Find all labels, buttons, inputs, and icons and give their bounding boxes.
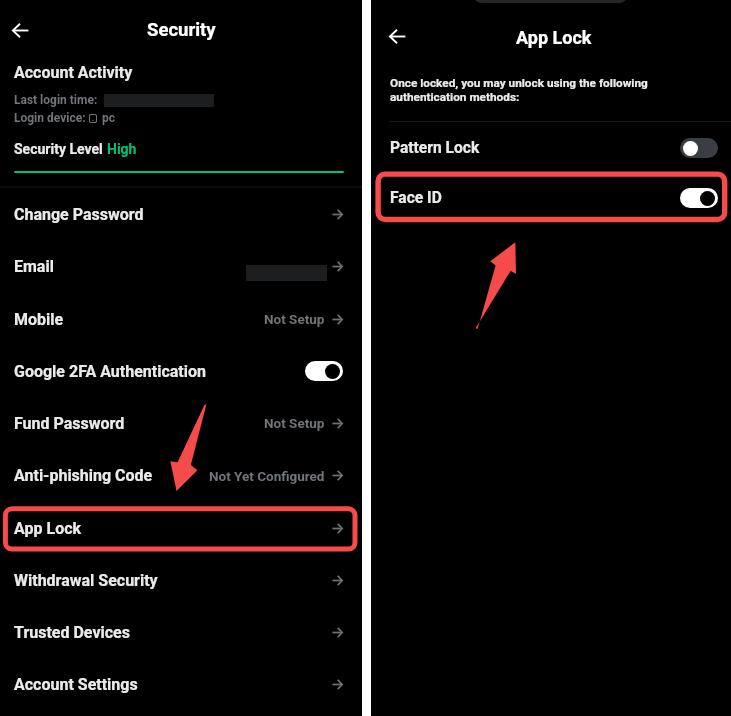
button[interactable]: Back bbox=[381, 20, 414, 53]
staticText: Once locked, you may unlock using the fo… bbox=[390, 76, 648, 104]
staticText: Security bbox=[147, 19, 216, 41]
staticText: Account Settings bbox=[14, 675, 138, 694]
staticText: Fund Password bbox=[14, 414, 125, 433]
staticText: Login device: bbox=[14, 111, 89, 125]
staticText: Not Setup bbox=[264, 415, 325, 431]
staticText: App Lock bbox=[516, 27, 592, 48]
staticText: Pattern Lock bbox=[390, 139, 480, 157]
staticText: Security Level bbox=[14, 141, 107, 157]
button[interactable]: Pattern Lock bbox=[371, 123, 731, 173]
button[interactable]: Google 2FA Authentication bbox=[0, 345, 362, 397]
staticText: Last login time: bbox=[14, 93, 101, 107]
button[interactable]: Face ID bbox=[371, 173, 731, 223]
button[interactable]: Trusted Devices bbox=[0, 606, 362, 658]
button[interactable]: App Lock bbox=[0, 502, 362, 554]
staticText: Trusted Devices bbox=[14, 623, 130, 642]
button[interactable]: Back bbox=[4, 14, 37, 47]
staticText: App Lock bbox=[14, 519, 82, 538]
staticText: High bbox=[107, 141, 137, 157]
staticText: Anti-phishing Code bbox=[14, 466, 153, 485]
button[interactable]: Email bbox=[0, 240, 362, 293]
staticText: Google 2FA Authentication bbox=[14, 362, 207, 381]
button[interactable]: Toggle on bbox=[305, 361, 343, 381]
staticText: pc bbox=[102, 111, 116, 125]
staticText: Email bbox=[14, 257, 54, 276]
staticText: Face ID bbox=[390, 189, 442, 207]
staticText: Not Setup bbox=[264, 311, 325, 327]
staticText: Mobile bbox=[14, 310, 64, 329]
button[interactable]: Change Password bbox=[0, 188, 362, 240]
staticText: Not Yet Configured bbox=[209, 468, 325, 484]
staticText: Change Password bbox=[14, 205, 144, 224]
button[interactable]: Toggle off bbox=[680, 138, 718, 158]
button[interactable]: Anti-phishing Code bbox=[0, 449, 362, 502]
staticText: Account Activity bbox=[14, 63, 133, 82]
staticText: Withdrawal Security bbox=[14, 571, 158, 590]
button[interactable]: Fund Password bbox=[0, 397, 362, 449]
button[interactable]: Toggle on bbox=[680, 188, 718, 208]
button[interactable]: Mobile bbox=[0, 293, 362, 345]
button[interactable]: Withdrawal Security bbox=[0, 554, 362, 606]
button[interactable]: Account Settings bbox=[0, 658, 362, 710]
